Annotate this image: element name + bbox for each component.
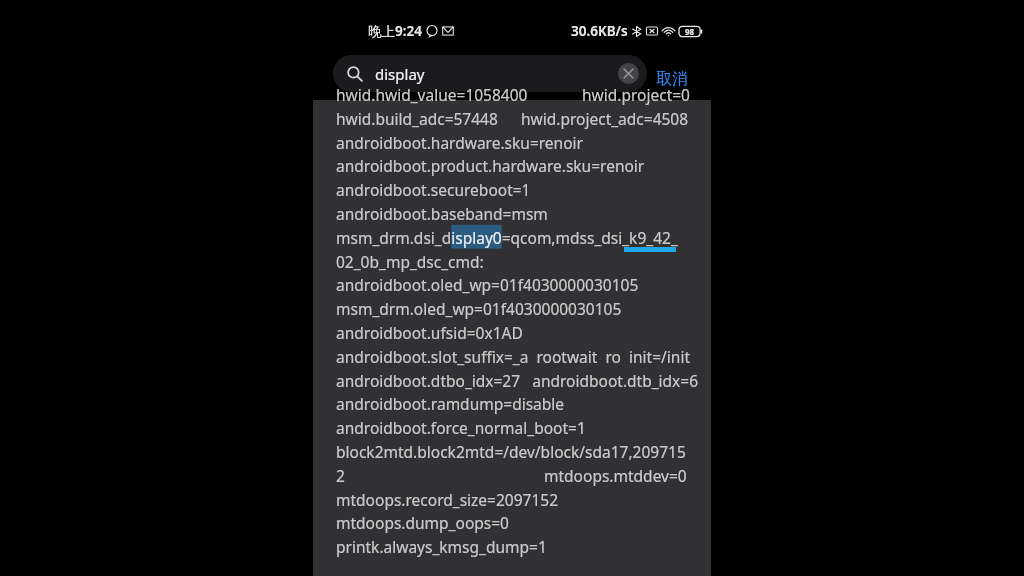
staticText: 30.6KB/s (571, 22, 628, 40)
staticText: mtdoops.dump_oops=0 (336, 512, 509, 533)
staticText: mtdoops.mtddev=0 (544, 465, 687, 486)
staticText: block2mtd.block2mtd=/dev/block/sda17,209… (336, 441, 686, 462)
staticText: 取消 (656, 69, 688, 89)
staticText: display (375, 64, 618, 84)
button[interactable]: display (333, 55, 647, 92)
staticText: msm_drm.dsi_display0=qcom,mdss_dsi_k9_42… (336, 227, 678, 248)
staticText: mtdoops.record_size=2097152 (336, 489, 559, 510)
staticText: msm_drm.oled_wp=01f4030000030105 (336, 298, 622, 319)
staticText: hwid.project_adc=4508 (521, 108, 689, 129)
button[interactable]: 取消 (651, 63, 693, 95)
staticText: androidboot.hardware.sku=renoir (336, 132, 583, 153)
staticText: hwid.project=0 (582, 84, 690, 105)
staticText: androidboot.dtbo_idx=27 androidboot.dtb_… (336, 370, 699, 391)
button[interactable]: hwid.hwid_value=1058400 (313, 100, 711, 576)
staticText: androidboot.product.hardware.sku=renoir (336, 155, 645, 176)
staticText: androidboot.force_normal_boot=1 (336, 417, 586, 438)
staticText: androidboot.ufsid=0x1AD (336, 322, 523, 343)
staticText: androidboot.baseband=msm (336, 203, 548, 224)
staticText: 晚上9:24 (368, 22, 422, 40)
staticText: 98 (685, 26, 695, 37)
staticText: hwid.hwid_value=1058400 (336, 84, 528, 105)
staticText: androidboot.ramdump=disable (336, 393, 565, 414)
staticText: androidboot.slot_suffix=_a rootwait ro i… (336, 346, 690, 367)
staticText: printk.always_kmsg_dump=1 (336, 536, 547, 557)
staticText: hwid.build_adc=57448 (336, 108, 498, 129)
staticText: 02_0b_mp_dsc_cmd: (336, 251, 484, 272)
staticText: androidboot.oled_wp=01f4030000030105 (336, 274, 639, 295)
staticText: 2 (336, 465, 345, 486)
button[interactable]: Clear search (618, 63, 639, 84)
staticText: androidboot.secureboot=1 (336, 179, 531, 200)
